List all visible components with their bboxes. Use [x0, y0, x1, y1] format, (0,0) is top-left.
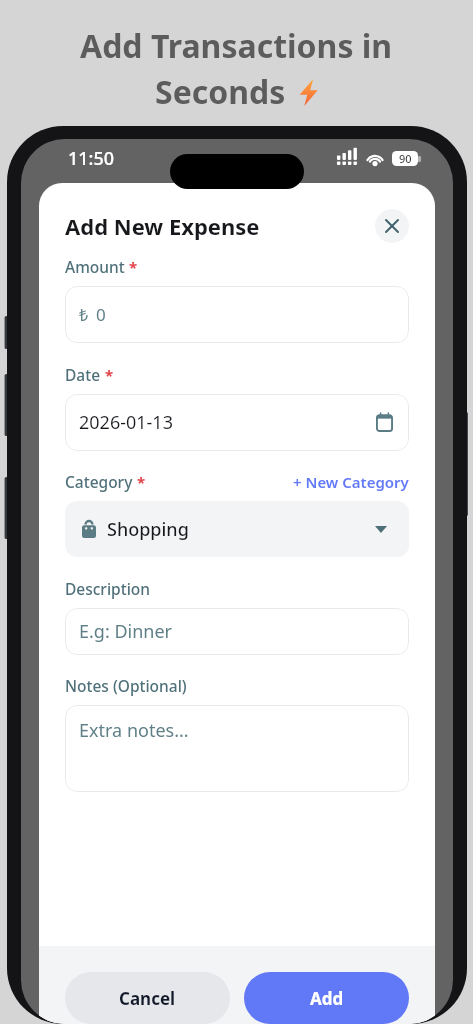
button[interactable]: Shopping — [65, 501, 409, 557]
staticText: Notes (Optional) — [65, 675, 187, 696]
staticText: Date — [65, 364, 101, 385]
staticText: Shopping — [107, 517, 189, 542]
staticText: 0 — [96, 303, 106, 326]
staticText: Add — [310, 987, 344, 1010]
staticText: * — [129, 257, 138, 277]
staticText: Add New Expense — [65, 211, 260, 241]
button[interactable]: Add — [244, 972, 409, 1024]
staticText: E.g: Dinner — [79, 619, 173, 644]
button[interactable]: Cancel — [65, 972, 230, 1024]
button[interactable]: ₺ — [65, 286, 409, 343]
staticText: Extra notes... — [79, 718, 189, 743]
staticText: Amount — [65, 256, 125, 277]
button[interactable]: + New Category — [293, 472, 409, 492]
staticText: Add Transactions in — [80, 24, 393, 68]
staticText: * — [137, 472, 146, 492]
staticText: 2026-01-13 — [79, 410, 173, 435]
staticText: + New Category — [293, 472, 409, 492]
button[interactable]: E.g: Dinner — [65, 608, 409, 655]
staticText: ₺ — [79, 304, 89, 326]
button[interactable]: Extra notes... — [65, 705, 409, 792]
staticText: Category — [65, 471, 133, 492]
staticText: Cancel — [119, 987, 176, 1010]
staticText: 90 — [399, 151, 412, 166]
button[interactable]: 2026-01-13 — [65, 394, 409, 451]
staticText: Seconds — [155, 70, 286, 114]
staticText: 11:50 — [68, 146, 115, 171]
button[interactable]: Close — [375, 209, 409, 243]
staticText: * — [105, 365, 114, 385]
staticText: Description — [65, 578, 151, 599]
